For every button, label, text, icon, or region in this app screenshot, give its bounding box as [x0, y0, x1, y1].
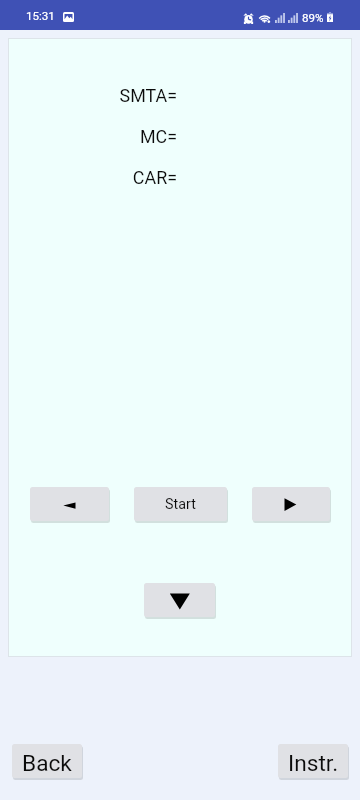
button[interactable]: Next — [252, 487, 330, 521]
button[interactable]: Instr. — [278, 744, 348, 778]
button[interactable]: Down — [144, 583, 215, 617]
button[interactable]: Start — [134, 487, 227, 521]
staticText: CAR= — [0, 167, 177, 188]
staticText: SMTA= — [0, 85, 177, 106]
staticText: Instr. — [288, 750, 339, 777]
staticText: 15:31 — [26, 9, 55, 23]
button[interactable]: Previous — [30, 487, 109, 521]
staticText: 89% — [302, 11, 324, 25]
button[interactable]: Back — [12, 744, 82, 778]
staticText: Start — [165, 496, 196, 513]
staticText: MC= — [0, 126, 177, 147]
staticText: Back — [22, 750, 72, 777]
